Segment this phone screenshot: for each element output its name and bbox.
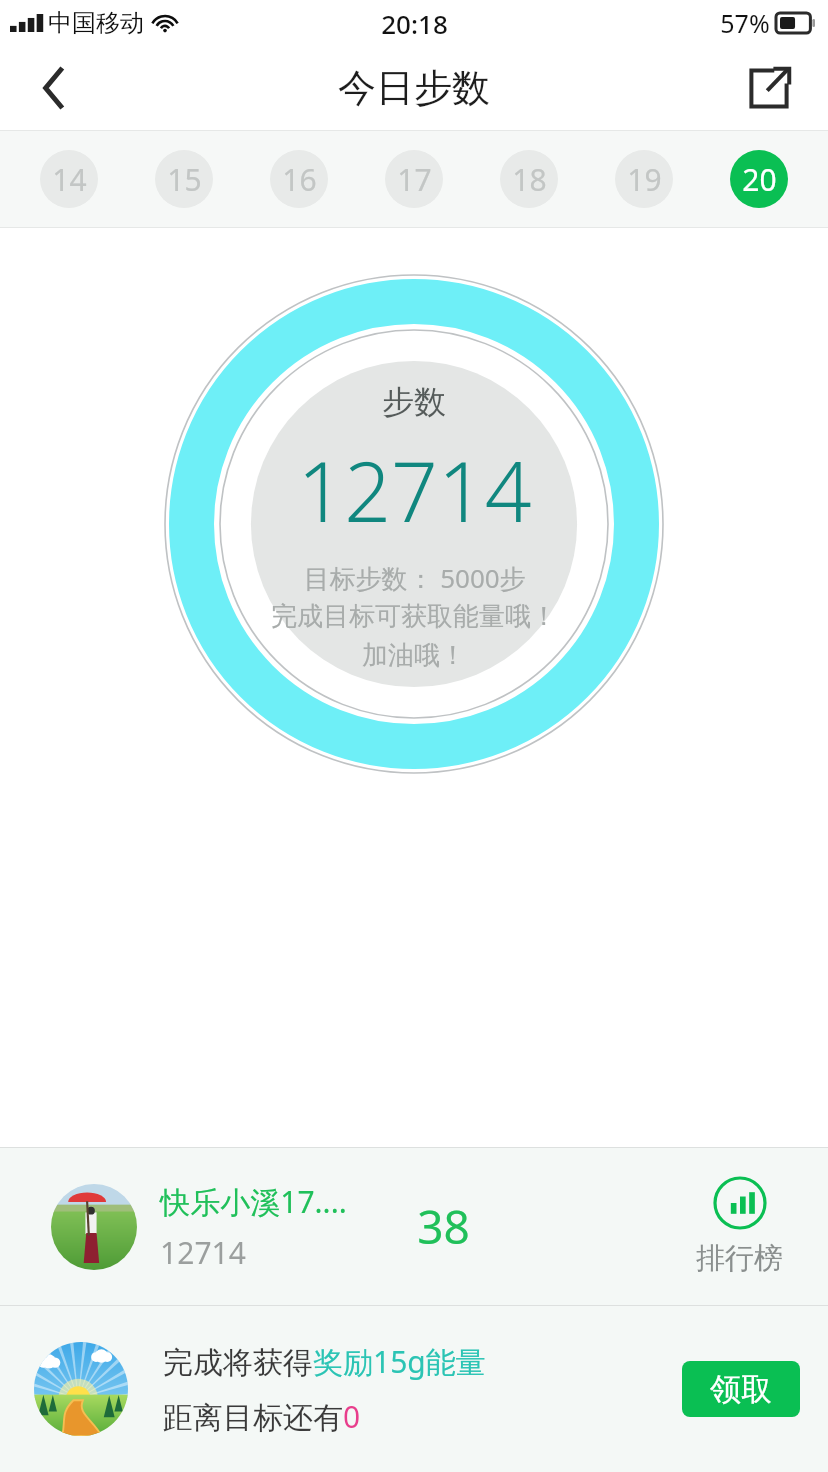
- button[interactable]: 15: [126, 131, 241, 227]
- button[interactable]: Share: [738, 57, 800, 119]
- button[interactable]: 快乐小溪17....: [0, 1148, 828, 1305]
- staticText: 20:18: [381, 6, 448, 41]
- staticText: 57%: [720, 6, 770, 40]
- staticText: 目标步数： 5000步: [303, 560, 526, 596]
- staticText: 19: [627, 159, 662, 200]
- staticText: 15: [167, 159, 202, 200]
- button[interactable]: 14: [12, 131, 126, 227]
- button[interactable]: 18: [471, 131, 586, 227]
- staticText: 16: [282, 159, 317, 200]
- staticText: 完成目标可获取能量哦！: [271, 600, 557, 633]
- button[interactable]: 20: [701, 131, 816, 227]
- button[interactable]: 17: [356, 131, 471, 227]
- button[interactable]: 排行榜: [696, 1176, 783, 1277]
- staticText: 12714: [297, 434, 532, 546]
- staticText: 完成将获得奖励15g能量: [163, 1341, 486, 1382]
- staticText: 17: [397, 159, 432, 200]
- staticText: 38: [417, 1195, 470, 1258]
- staticText: 步数: [382, 382, 446, 422]
- button[interactable]: 领取: [682, 1361, 800, 1417]
- staticText: 距离目标还有0: [163, 1396, 361, 1437]
- staticText: 加油哦！: [362, 639, 466, 672]
- staticText: 快乐小溪17....: [160, 1181, 347, 1222]
- staticText: 领取: [710, 1370, 772, 1409]
- staticText: 14: [52, 159, 87, 200]
- button[interactable]: 16: [241, 131, 356, 227]
- staticText: 18: [512, 159, 547, 200]
- staticText: 20: [742, 159, 777, 200]
- staticText: 中国移动: [48, 8, 144, 38]
- staticText: 排行榜: [696, 1240, 783, 1277]
- staticText: 今日步数: [338, 64, 490, 112]
- button[interactable]: Back: [24, 57, 86, 119]
- button[interactable]: 19: [586, 131, 701, 227]
- staticText: 12714: [160, 1232, 246, 1273]
